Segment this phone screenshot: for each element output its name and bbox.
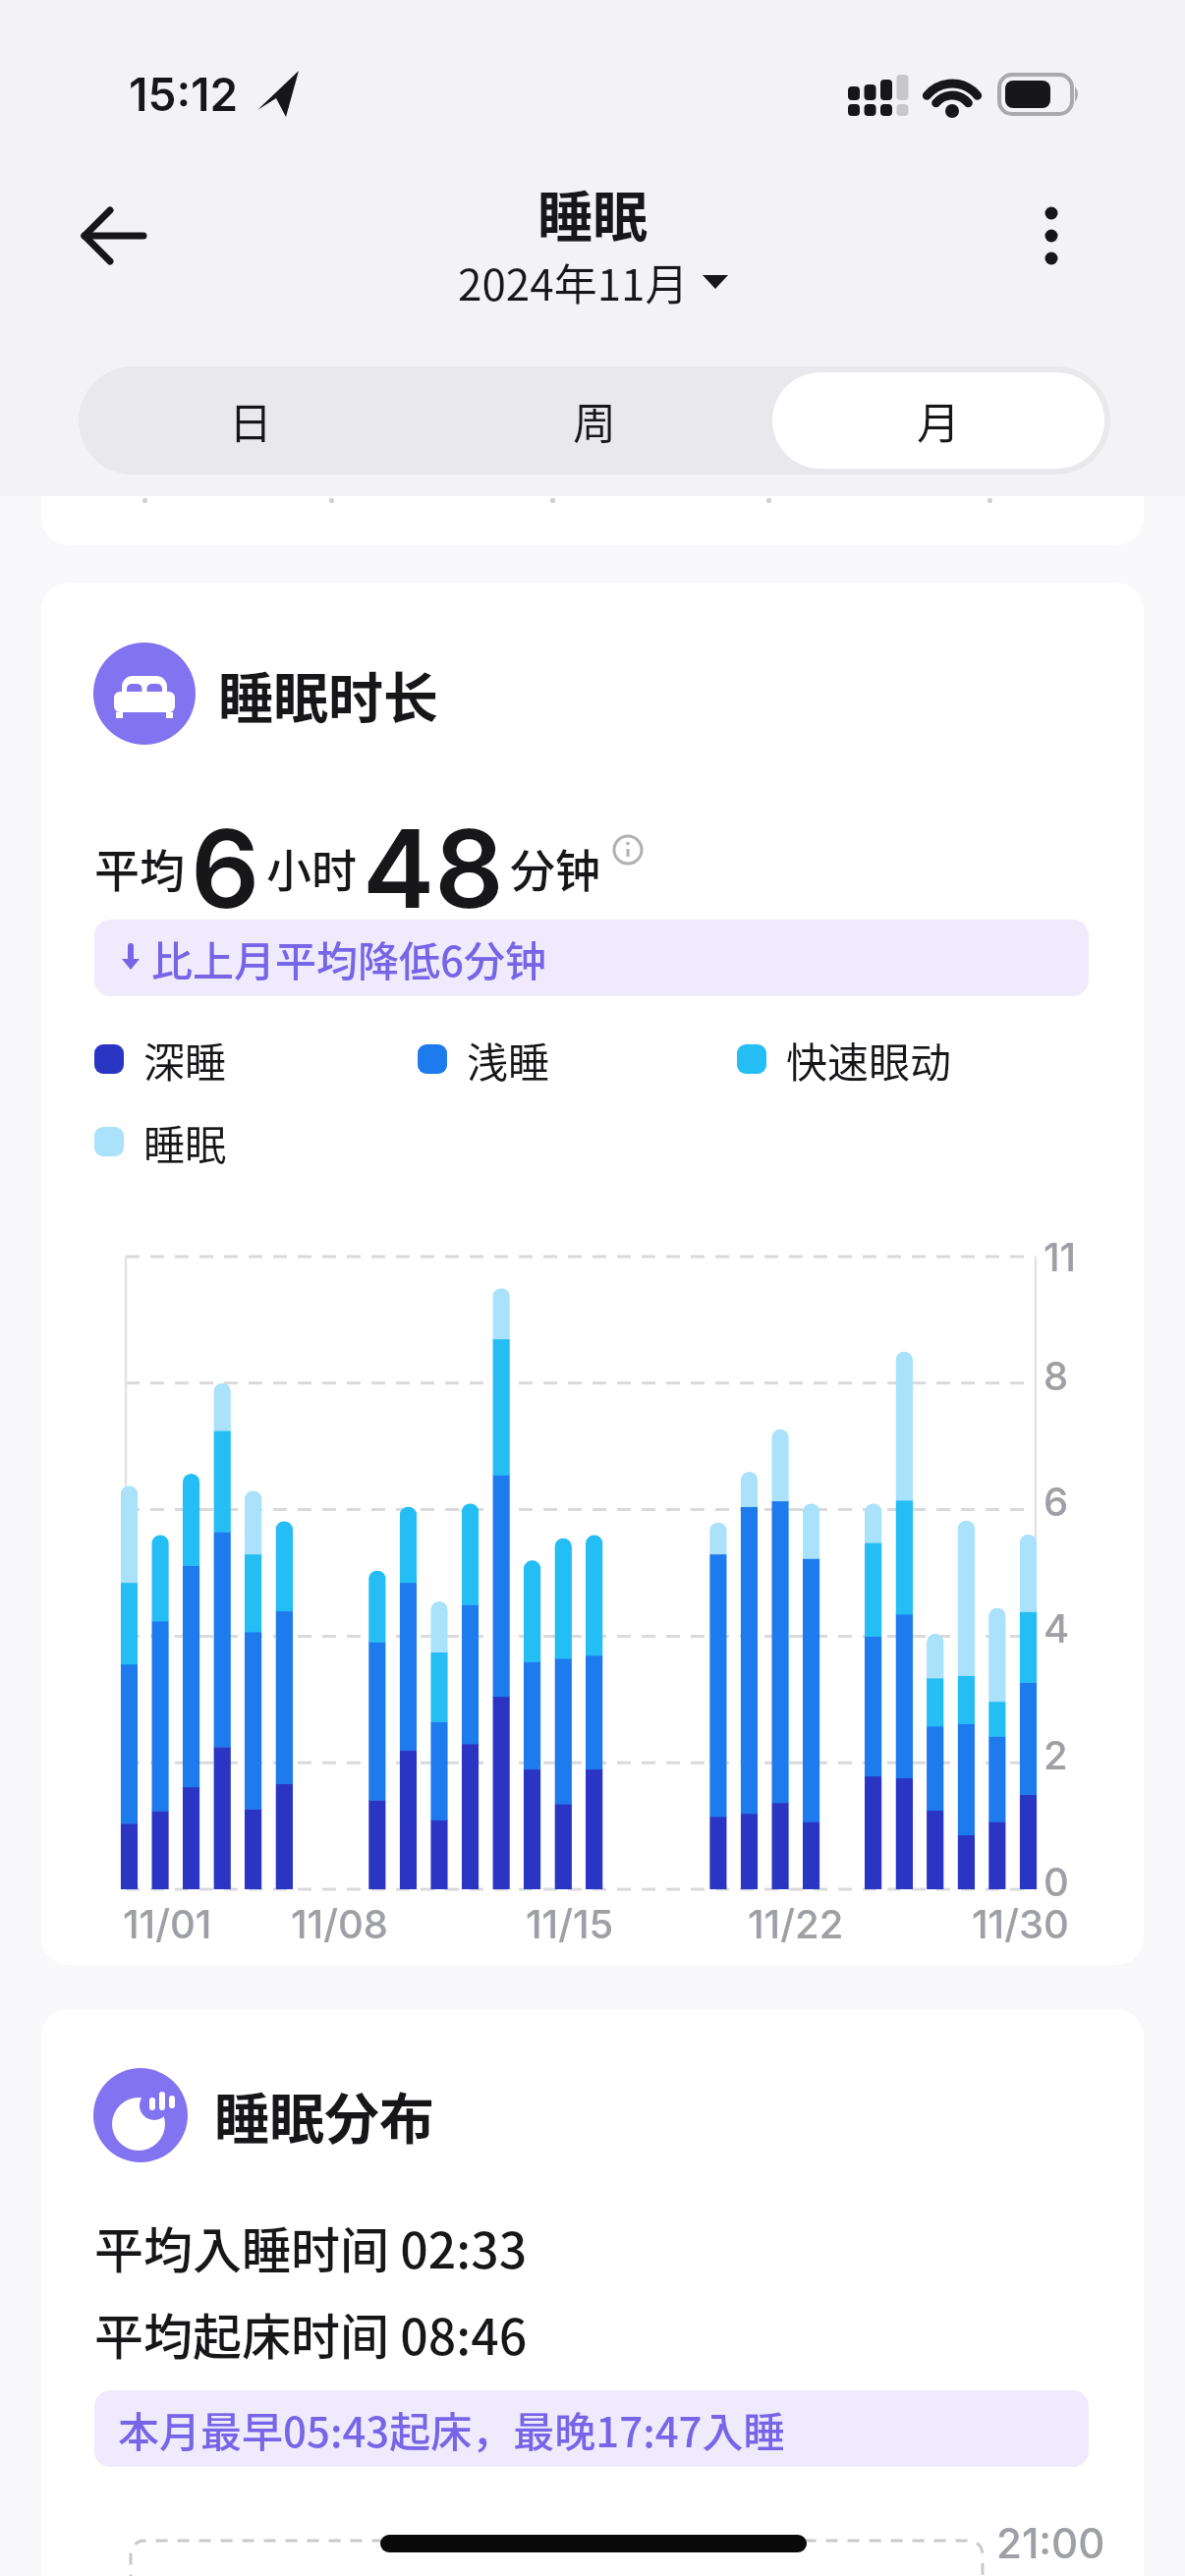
staticText: 11 <box>1044 1233 1077 1280</box>
staticText: 8 <box>1044 1352 1069 1399</box>
staticText: 睡眠 <box>537 173 648 252</box>
button[interactable] <box>69 196 167 275</box>
staticText: 4 <box>1044 1604 1070 1652</box>
button[interactable]: 日 <box>79 366 423 475</box>
button[interactable] <box>1012 192 1091 280</box>
button[interactable] <box>609 831 652 874</box>
staticText: 2 <box>1044 1731 1068 1778</box>
staticText: 21:00 <box>996 2518 1105 2568</box>
staticText: 日 <box>229 389 272 452</box>
staticText: 平均 <box>94 835 185 901</box>
staticText: 2024年11月 <box>458 251 689 313</box>
staticText: 11/01 <box>123 1900 212 1947</box>
staticText: 比上月平均降低6分钟 <box>151 928 546 988</box>
button[interactable]: 2024年11月 <box>432 248 753 316</box>
staticText: 小时 <box>266 835 357 901</box>
button[interactable]: 周 <box>423 366 766 475</box>
button[interactable]: 比上月平均降低6分钟 <box>94 920 1089 996</box>
staticText: 15:12 <box>129 67 239 122</box>
staticText: 月 <box>917 389 960 452</box>
staticText: 周 <box>573 389 616 452</box>
staticText: 本月最早05:43起床，最晚17:47入睡 <box>118 2399 785 2459</box>
button[interactable]: 本月最早05:43起床，最晚17:47入睡 <box>94 2390 1089 2467</box>
staticText: 11/08 <box>291 1900 388 1947</box>
staticText: 11/30 <box>972 1900 1069 1947</box>
staticText: 深睡 <box>143 1030 227 1090</box>
button[interactable]: 月 <box>772 372 1104 469</box>
staticText: 48 <box>363 803 504 933</box>
staticText: 11/15 <box>526 1900 614 1947</box>
staticText: 浅睡 <box>467 1030 550 1090</box>
staticText: 睡眠 <box>143 1112 227 1172</box>
staticText: 睡眠分布 <box>214 2075 434 2155</box>
staticText: 分钟 <box>510 835 600 901</box>
staticText: 平均起床时间 08:46 <box>94 2298 528 2369</box>
staticText: 睡眠时长 <box>218 654 438 734</box>
staticText: 6 <box>191 803 260 933</box>
staticText: 11/22 <box>748 1900 844 1947</box>
staticText: 平均入睡时间 02:33 <box>94 2212 528 2282</box>
staticText: 0 <box>1044 1858 1069 1905</box>
staticText: 6 <box>1044 1478 1069 1525</box>
staticText: 快速眼动 <box>786 1030 952 1090</box>
